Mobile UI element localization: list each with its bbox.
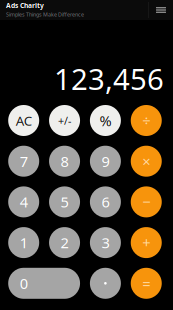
button[interactable]: Decimal point: [90, 268, 121, 299]
staticText: Simples Things Make Difference: [6, 11, 84, 18]
staticText: +: [142, 233, 150, 252]
staticText: 0: [20, 274, 28, 293]
button[interactable]: 1: [8, 227, 39, 258]
staticText: 3: [101, 233, 109, 252]
button[interactable]: 8: [49, 146, 80, 177]
staticText: 123,456: [54, 59, 164, 98]
button[interactable]: =: [131, 268, 162, 299]
button[interactable]: 6: [90, 186, 121, 217]
button[interactable]: +: [131, 227, 162, 258]
staticText: %: [99, 111, 111, 130]
staticText: ÷: [142, 111, 150, 130]
staticText: =: [142, 274, 150, 293]
staticText: AC: [16, 112, 32, 129]
button[interactable]: +/-: [49, 105, 80, 136]
button[interactable]: 7: [8, 146, 39, 177]
button[interactable]: %: [90, 105, 121, 136]
button[interactable]: ÷: [131, 105, 162, 136]
staticText: 2: [60, 233, 68, 252]
staticText: 9: [101, 151, 109, 171]
staticText: 7: [20, 151, 28, 171]
button[interactable]: 2: [49, 227, 80, 258]
button[interactable]: ×: [131, 146, 162, 177]
staticText: 1: [20, 233, 28, 252]
staticText: 6: [101, 192, 109, 212]
button[interactable]: 4: [8, 186, 39, 217]
staticText: +/-: [58, 113, 71, 128]
staticText: Ads Charity: [6, 1, 44, 10]
staticText: ×: [142, 151, 150, 171]
button[interactable]: −: [131, 186, 162, 217]
staticText: −: [142, 192, 150, 212]
button[interactable]: Ads Charity: [0, 0, 173, 20]
button[interactable]: AC: [8, 105, 39, 136]
staticText: 8: [60, 151, 68, 171]
staticText: 5: [60, 192, 68, 212]
button[interactable]: 0: [8, 268, 80, 299]
staticText: 4: [20, 192, 28, 212]
button[interactable]: 5: [49, 186, 80, 217]
button[interactable]: 3: [90, 227, 121, 258]
button[interactable]: 9: [90, 146, 121, 177]
